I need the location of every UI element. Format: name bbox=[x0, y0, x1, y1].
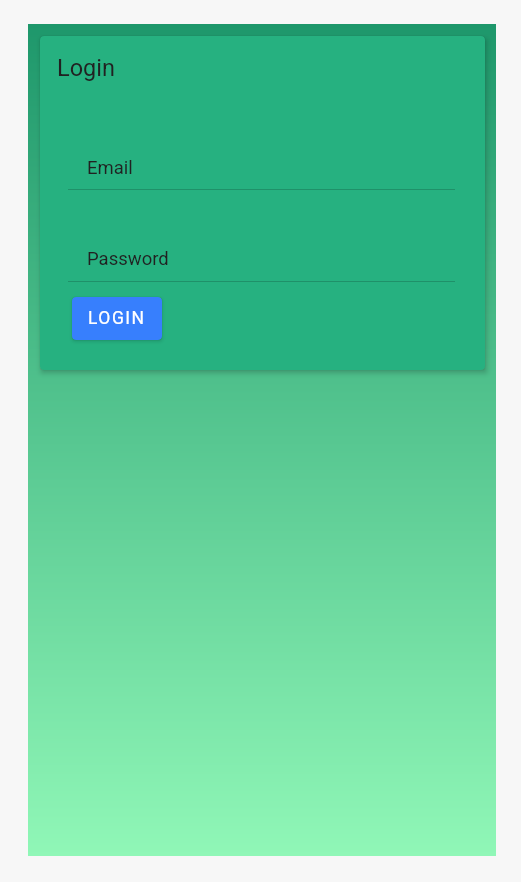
staticText: LOGIN bbox=[88, 308, 146, 329]
button[interactable]: Email bbox=[40, 136, 485, 190]
button[interactable]: LOGIN bbox=[72, 297, 162, 340]
staticText: Email bbox=[87, 157, 133, 179]
staticText: Password bbox=[87, 248, 169, 270]
staticText: Login bbox=[57, 54, 115, 82]
button[interactable]: Password bbox=[40, 227, 485, 282]
